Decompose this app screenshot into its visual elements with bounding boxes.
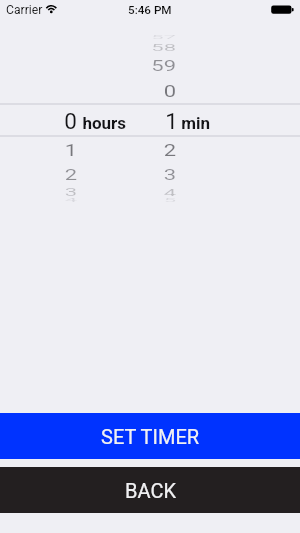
staticText: 3 <box>112 167 176 184</box>
staticText: SET TIMER <box>101 425 200 448</box>
staticText: 0 <box>7 108 77 134</box>
staticText: 57 <box>112 34 176 41</box>
staticText: 2 <box>13 167 77 184</box>
button[interactable]: SET TIMER <box>0 413 300 459</box>
other: Battery full <box>270 5 294 15</box>
staticText: 0 <box>112 81 176 102</box>
staticText: 3 <box>13 187 77 199</box>
staticText: 59 <box>112 58 176 75</box>
button[interactable]: Hours picker, 0 hours <box>0 20 150 215</box>
button[interactable]: Minutes picker, 1 min <box>150 20 300 215</box>
staticText: 1 <box>108 108 178 134</box>
staticText: 4 <box>13 197 77 204</box>
staticText: 58 <box>112 43 176 54</box>
staticText: Carrier <box>6 3 43 17</box>
staticText: 5:46 PM <box>128 3 172 17</box>
staticText: BACK <box>125 479 176 502</box>
staticText: 4 <box>112 187 176 199</box>
staticText: 1 <box>13 140 77 161</box>
button[interactable]: BACK <box>0 467 300 513</box>
staticText: 2 <box>112 140 176 161</box>
staticText: min <box>140 113 210 133</box>
staticText: hours <box>56 113 126 133</box>
other: Wi-Fi signal <box>45 4 58 14</box>
